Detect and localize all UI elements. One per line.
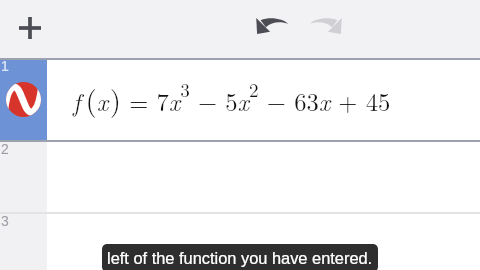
staticText: f (x ) = 7x3 − 5x2 − 63x + 45: [73, 75, 391, 119]
button[interactable]: Add expression: [12, 10, 48, 46]
button[interactable]: 3: [0, 214, 480, 270]
button[interactable]: Redo: [303, 5, 347, 45]
button[interactable]: 2: [0, 142, 480, 212]
staticText: left of the function you have entered.: [107, 249, 373, 267]
staticText: 1: [1, 58, 9, 74]
button[interactable]: Undo: [250, 5, 294, 45]
staticText: 2: [1, 141, 9, 157]
button[interactable]: left of the function you have entered.: [102, 244, 378, 270]
button[interactable]: 1: [0, 60, 480, 140]
staticText: 3: [1, 213, 9, 229]
